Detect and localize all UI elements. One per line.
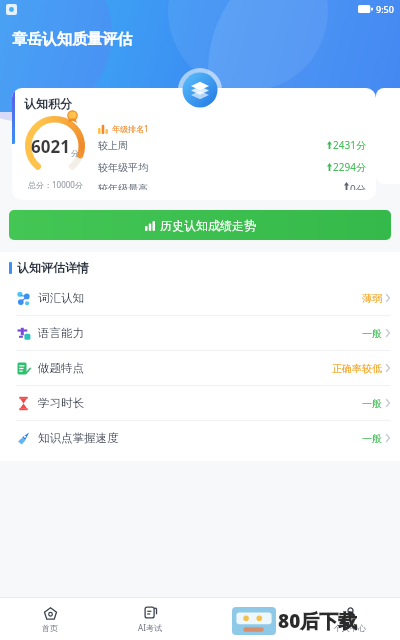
staticText: 0分	[350, 182, 366, 190]
button[interactable]: 知识点掌握速度	[0, 421, 400, 455]
staticText: 2294分	[333, 160, 366, 174]
staticText: 较年级平均	[98, 161, 148, 174]
button[interactable]: 个人中心	[300, 598, 400, 640]
staticText: 认知积分	[24, 96, 72, 111]
staticText: 一般	[362, 432, 382, 445]
staticText: 首页	[42, 623, 58, 633]
staticText: AI考辅	[238, 622, 262, 633]
button[interactable]: 词汇认知	[0, 281, 400, 315]
staticText: AI考试	[138, 622, 162, 633]
staticText: 历史认知成绩走势	[160, 218, 256, 233]
staticText: 个人中心	[334, 623, 366, 633]
button[interactable]: 语言能力	[0, 316, 400, 350]
button[interactable]: 首页	[0, 598, 100, 640]
staticText: 词汇认知	[38, 291, 84, 305]
staticText: 知识点掌握速度	[38, 431, 119, 445]
staticText: 认知评估详情	[17, 260, 89, 275]
staticText: 章岳认知质量评估	[12, 30, 132, 49]
staticText: 9:50	[376, 3, 394, 15]
staticText: 语言能力	[38, 326, 84, 340]
staticText: 总分：10000分	[28, 179, 83, 190]
staticText: 学习时长	[38, 396, 84, 410]
button[interactable]: 做题特点	[0, 351, 400, 385]
staticText: 6021	[31, 135, 70, 158]
staticText: 分	[71, 148, 79, 158]
staticText: 年级排名1	[112, 123, 149, 134]
staticText: 做题特点	[38, 361, 84, 375]
button[interactable]: 认知积分	[12, 88, 376, 200]
staticText: 2431分	[333, 138, 366, 152]
staticText: 一般	[362, 327, 382, 340]
button[interactable]: 学习时长	[0, 386, 400, 420]
staticText: 薄弱	[362, 292, 382, 305]
staticText: 80后下载	[278, 608, 358, 634]
button[interactable]: AI考试	[100, 598, 200, 640]
staticText: 较年级最高	[98, 182, 148, 190]
staticText: 正确率较低	[332, 362, 382, 375]
button[interactable]: AI考辅	[200, 598, 300, 640]
button[interactable]: 历史认知成绩走势	[9, 210, 391, 240]
staticText: 较上周	[98, 139, 128, 152]
staticText: 一般	[362, 397, 382, 410]
